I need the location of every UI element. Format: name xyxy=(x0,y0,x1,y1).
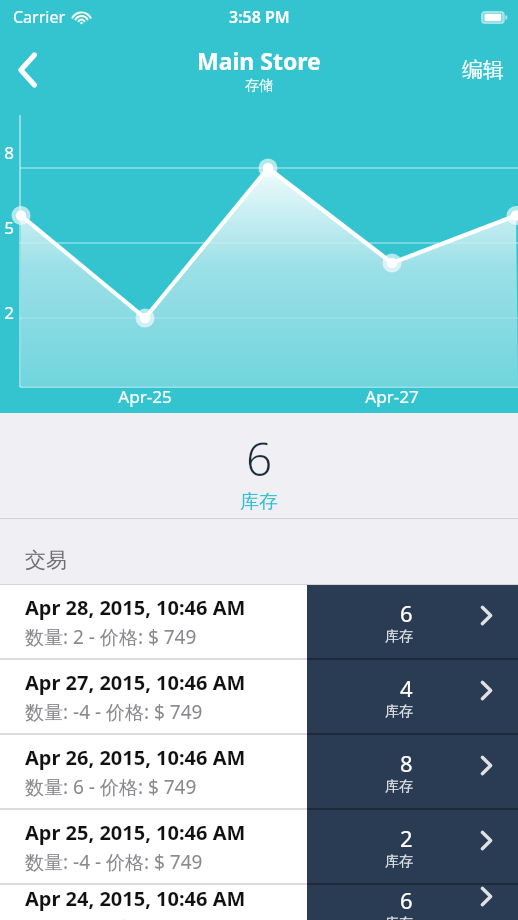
staticText: 数量: -4 - 价格: $ 749 xyxy=(25,699,203,725)
staticText: 库存 xyxy=(240,490,278,514)
staticText: 交易 xyxy=(25,547,67,573)
staticText: 6 xyxy=(400,598,413,628)
staticText: 数量: 2 - 价格: $ 749 xyxy=(25,624,197,650)
staticText: 数量: -4 - 价格: $ 749 xyxy=(25,849,203,875)
staticText: Apr-25 xyxy=(112,385,178,408)
staticText: 库存 xyxy=(385,703,413,721)
staticText: 2 xyxy=(0,301,18,324)
staticText: Apr 27, 2015, 10:46 AM xyxy=(25,669,246,696)
staticText: Apr 25, 2015, 10:46 AM xyxy=(25,819,246,846)
button[interactable]: Apr 24, 2015, 10:46 AM xyxy=(0,885,518,920)
staticText: 库存 xyxy=(385,628,413,646)
staticText: 6 xyxy=(400,885,413,915)
staticText: Carrier xyxy=(13,6,66,28)
staticText: 库存 xyxy=(385,778,413,796)
staticText: 库存 xyxy=(385,915,413,920)
button[interactable]: Apr 27, 2015, 10:46 AM xyxy=(0,660,518,733)
button[interactable]: Apr 26, 2015, 10:46 AM xyxy=(0,735,518,808)
staticText: 2 xyxy=(400,823,413,853)
staticText: 数量: 6 - 价格: $ 749 xyxy=(25,774,197,800)
button[interactable]: Apr 25, 2015, 10:46 AM xyxy=(0,810,518,883)
staticText: 3:58 PM xyxy=(229,6,290,28)
button[interactable]: Apr 28, 2015, 10:46 AM xyxy=(0,585,518,658)
staticText: 5 xyxy=(0,216,18,239)
staticText: 4 xyxy=(400,673,413,703)
staticText: 6 xyxy=(246,427,273,490)
staticText: 编辑 xyxy=(462,57,504,83)
staticText: 8 xyxy=(400,748,413,778)
staticText: 存储 xyxy=(245,77,273,95)
button[interactable]: Back xyxy=(4,46,52,94)
staticText: Apr 26, 2015, 10:46 AM xyxy=(25,744,246,771)
staticText: Apr 28, 2015, 10:46 AM xyxy=(25,594,246,621)
staticText: 库存 xyxy=(385,853,413,871)
button[interactable]: 编辑 xyxy=(448,47,518,93)
staticText: Apr 24, 2015, 10:46 AM xyxy=(25,885,246,912)
staticText: 8 xyxy=(0,141,18,164)
staticText: Apr-27 xyxy=(359,385,425,408)
staticText: Main Store xyxy=(197,45,321,76)
